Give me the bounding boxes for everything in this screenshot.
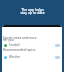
button[interactable]: Football xyxy=(2,43,62,47)
staticText: stay up to date xyxy=(20,10,45,15)
button[interactable]: Weather xyxy=(2,55,62,59)
staticText: Sports news and more xyxy=(3,36,37,40)
staticText: Recommended topics xyxy=(3,48,36,52)
staticText: Weather xyxy=(9,55,21,59)
staticText: Football xyxy=(9,43,20,47)
staticText: for you xyxy=(3,38,14,42)
staticText: The app helps xyxy=(21,7,44,12)
